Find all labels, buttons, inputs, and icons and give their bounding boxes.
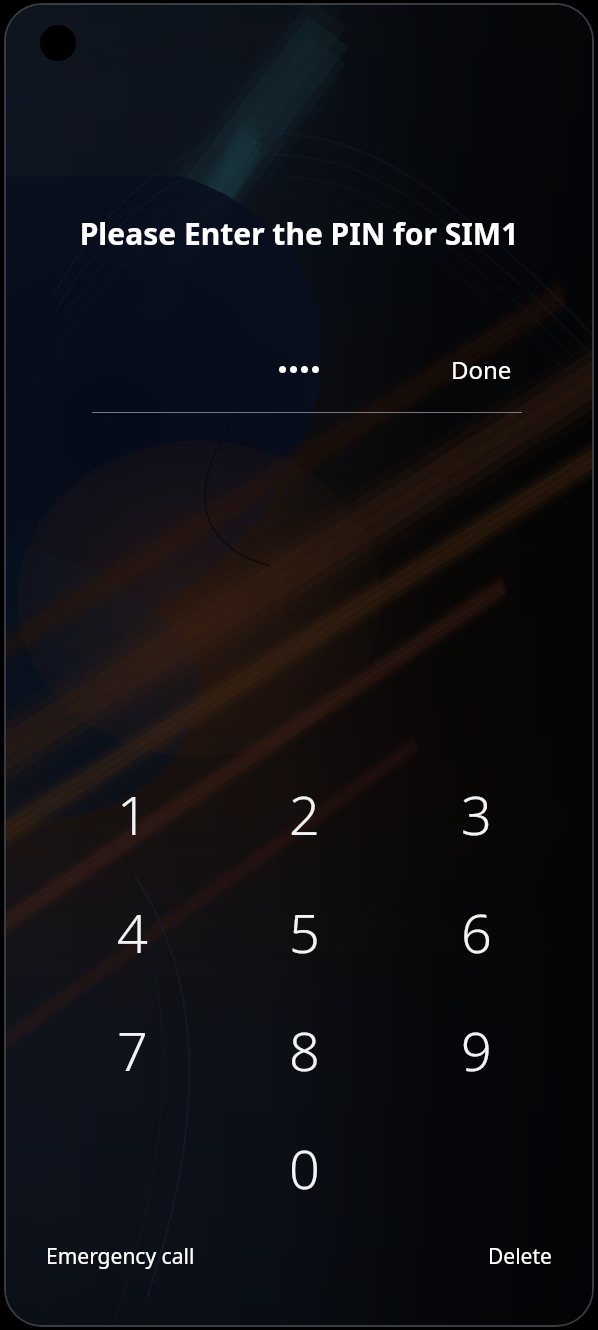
staticText: 4 <box>117 895 148 969</box>
button[interactable]: Digit 5 <box>246 882 362 982</box>
button[interactable]: Digit 9 <box>418 1000 534 1100</box>
staticText: 7 <box>117 1013 148 1087</box>
button[interactable]: Digit 1 <box>74 764 190 864</box>
staticText: 2 <box>289 777 320 851</box>
button[interactable]: Digit 2 <box>246 764 362 864</box>
button[interactable]: Digit 4 <box>74 882 190 982</box>
staticText: Delete <box>488 1242 552 1271</box>
button[interactable]: Delete <box>474 1232 566 1281</box>
staticText: Emergency call <box>46 1242 195 1271</box>
button[interactable]: Digit 7 <box>74 1000 190 1100</box>
staticText: 9 <box>461 1013 492 1087</box>
button[interactable]: Emergency call <box>32 1232 209 1281</box>
button[interactable]: Digit 0 <box>246 1118 362 1218</box>
staticText: 5 <box>289 895 320 969</box>
button[interactable]: Digit 3 <box>418 764 534 864</box>
staticText: Done <box>451 353 512 386</box>
button[interactable]: Done <box>445 347 518 392</box>
staticText: 1 <box>117 777 148 851</box>
staticText: 8 <box>289 1013 320 1087</box>
staticText: 6 <box>461 895 492 969</box>
button[interactable]: Digit 8 <box>246 1000 362 1100</box>
staticText: 3 <box>461 777 492 851</box>
button[interactable]: Digit 6 <box>418 882 534 982</box>
staticText: 0 <box>289 1131 320 1205</box>
staticText: Please Enter the PIN for SIM1 <box>6 213 592 254</box>
